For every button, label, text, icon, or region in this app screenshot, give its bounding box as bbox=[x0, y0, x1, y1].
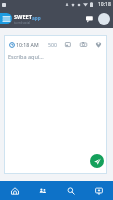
staticText: tu red social bbox=[14, 21, 30, 25]
button[interactable]: Profile bbox=[98, 13, 110, 25]
button[interactable]: Home bbox=[0, 181, 29, 200]
button[interactable]: Search bbox=[57, 181, 85, 200]
button[interactable]: Menu bbox=[0, 13, 12, 24]
button[interactable]: Location bbox=[94, 40, 103, 49]
staticText: app bbox=[32, 15, 41, 21]
staticText: Escriba aquí... bbox=[8, 53, 44, 60]
staticText: 10:18 bbox=[98, 1, 111, 8]
button[interactable]: People bbox=[29, 181, 57, 200]
button[interactable]: Chat bbox=[85, 181, 113, 200]
staticText: 500 bbox=[48, 41, 57, 48]
button[interactable]: Messages bbox=[83, 12, 97, 26]
button[interactable]: Attach photo bbox=[64, 40, 73, 49]
button[interactable]: Send bbox=[90, 154, 104, 168]
staticText: SWEET bbox=[14, 13, 32, 21]
button[interactable]: Camera bbox=[79, 40, 88, 49]
staticText: 10:18 AM bbox=[16, 41, 39, 48]
